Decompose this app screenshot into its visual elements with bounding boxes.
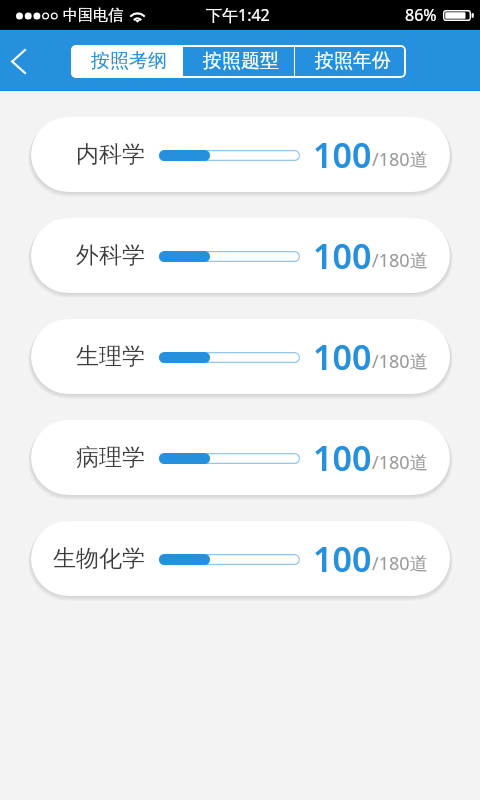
staticText: 100 (313, 536, 372, 582)
staticText: /180道 (372, 450, 428, 475)
staticText: 生理学 (76, 342, 145, 371)
staticText: /180道 (372, 551, 428, 576)
button[interactable]: 生理学 (31, 319, 450, 394)
staticText: 下午1:42 (206, 4, 270, 26)
staticText: 按照题型 (203, 49, 279, 73)
staticText: 中国电信 (63, 6, 123, 25)
staticText: 病理学 (76, 443, 145, 472)
button[interactable]: 外科学 (31, 218, 450, 293)
button[interactable]: 内科学 (31, 117, 450, 192)
staticText: 100 (313, 233, 372, 279)
staticText: /180道 (372, 248, 428, 273)
staticText: 按照考纲 (91, 49, 167, 73)
staticText: 外科学 (76, 241, 145, 270)
staticText: 100 (313, 435, 372, 481)
staticText: 生物化学 (53, 544, 145, 573)
button[interactable]: 生物化学 (31, 521, 450, 596)
staticText: /180道 (372, 147, 428, 172)
staticText: /180道 (372, 349, 428, 374)
button[interactable]: 按照题型 (183, 45, 294, 78)
button[interactable]: 病理学 (31, 420, 450, 495)
staticText: 按照年份 (315, 49, 391, 73)
staticText: 86% (405, 4, 437, 26)
staticText: 内科学 (76, 140, 145, 169)
button[interactable]: 按照考纲 (71, 45, 182, 78)
staticText: 100 (313, 132, 372, 178)
button[interactable]: Back (0, 30, 48, 91)
button[interactable]: 按照年份 (295, 45, 406, 78)
staticText: 100 (313, 334, 372, 380)
